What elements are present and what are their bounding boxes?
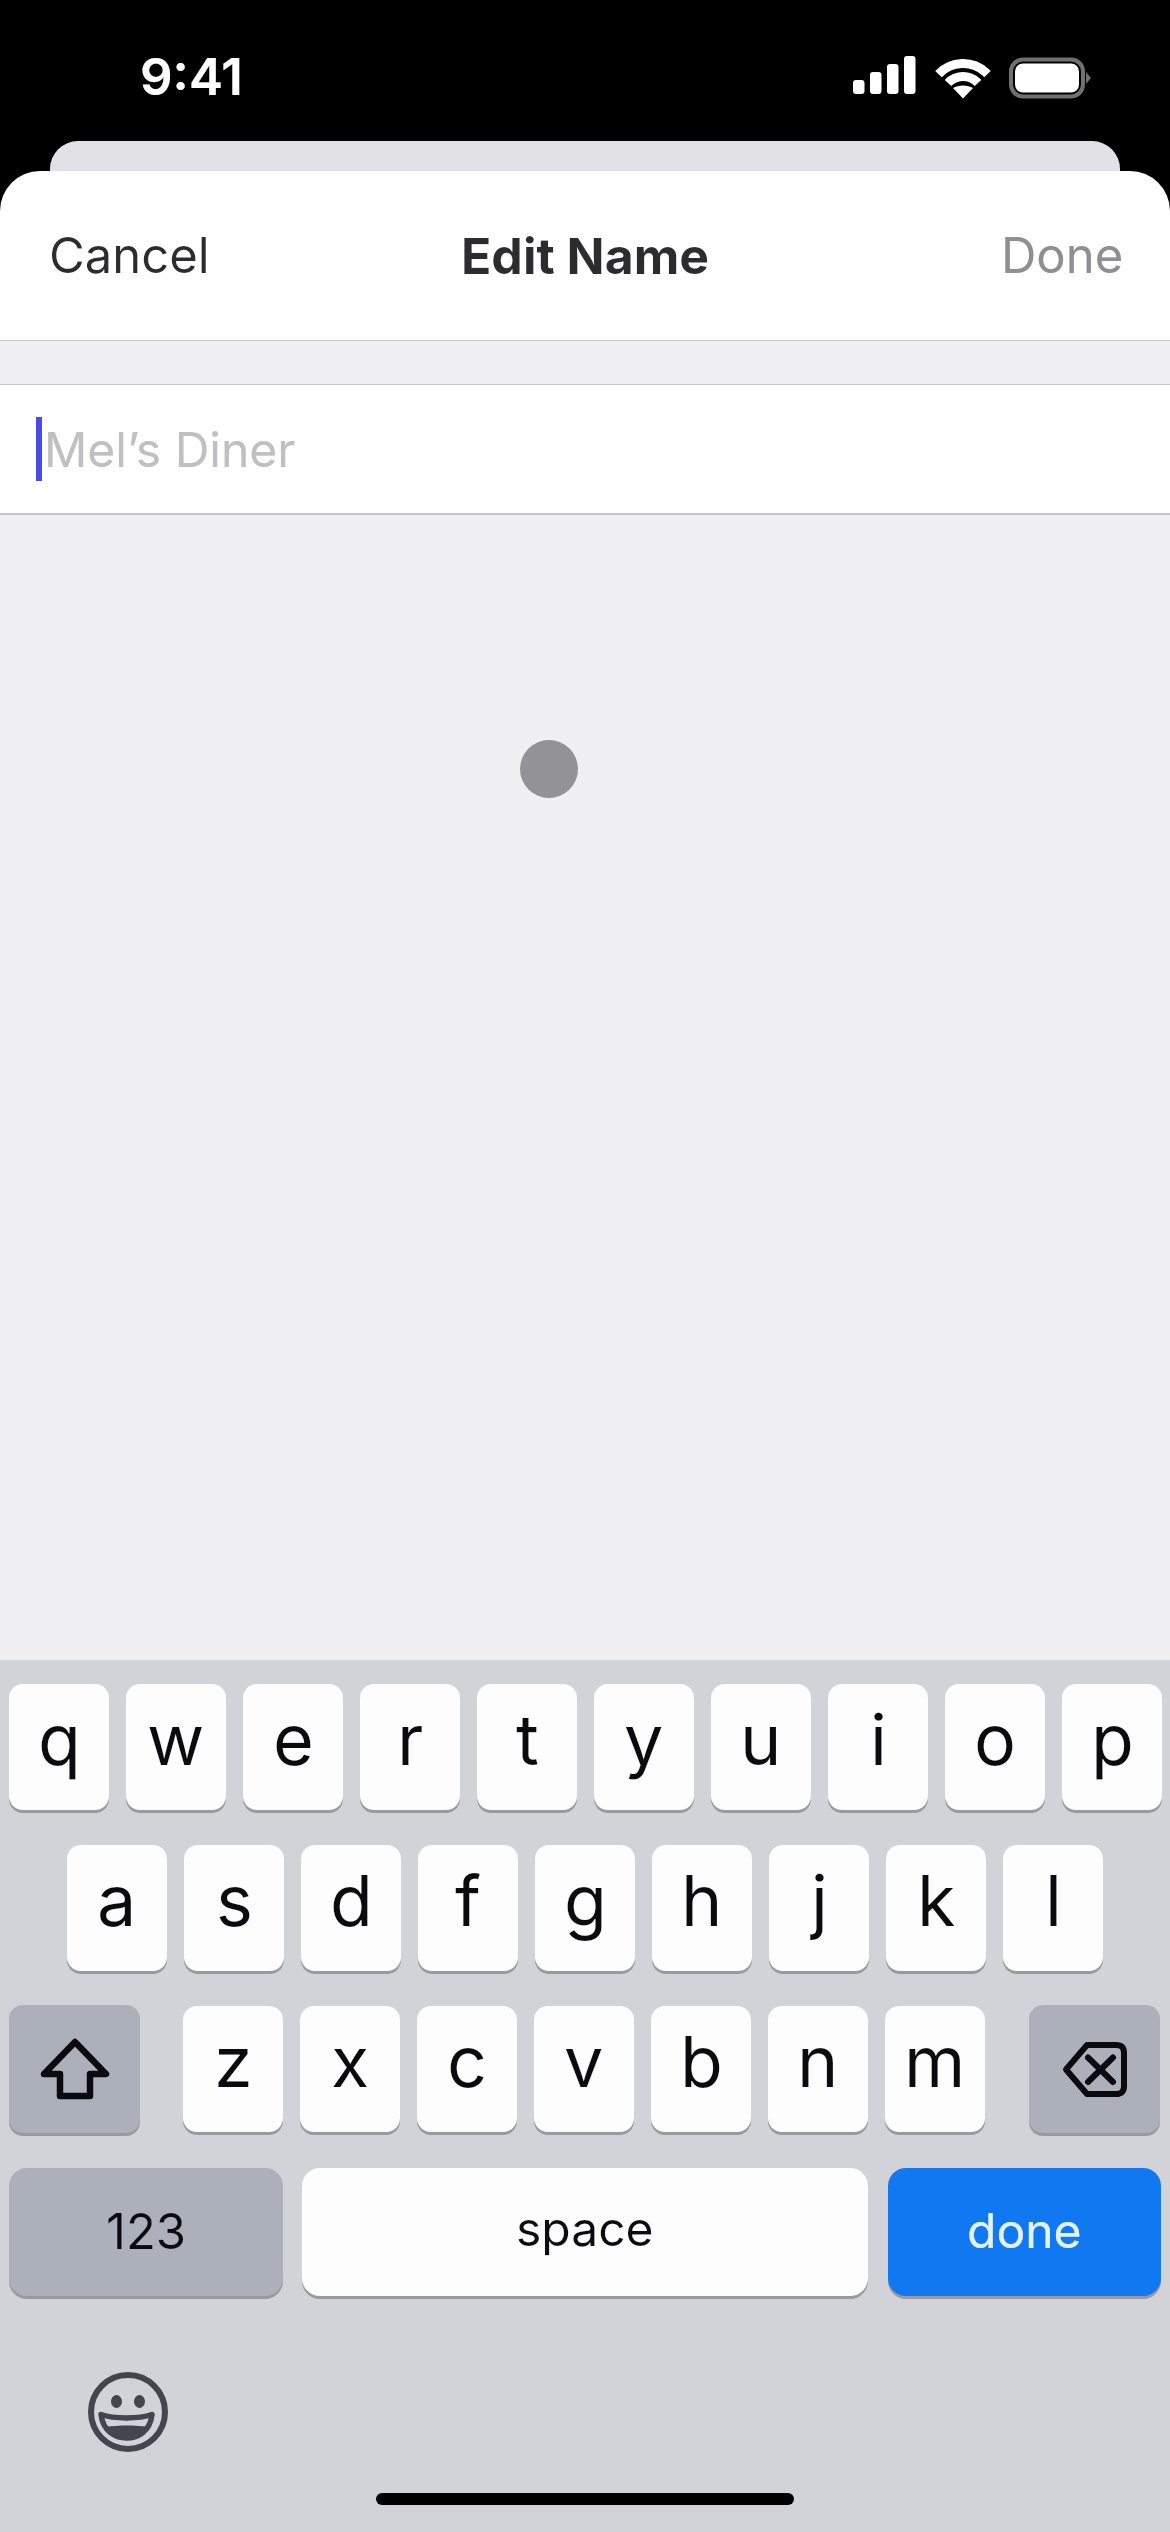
button[interactable]: done (888, 2168, 1161, 2296)
staticText: Cancel (49, 226, 210, 285)
button[interactable]: o (945, 1684, 1045, 1810)
button[interactable]: b (651, 2006, 751, 2132)
button[interactable]: Emoji keyboard (84, 2368, 172, 2456)
staticText: s (216, 1858, 253, 1943)
button[interactable]: j (769, 1845, 869, 1971)
staticText: h (681, 1858, 723, 1943)
button[interactable]: 123 (9, 2168, 283, 2296)
staticText: g (564, 1858, 607, 1943)
staticText: done (967, 2201, 1082, 2259)
button[interactable]: l (1003, 1845, 1103, 1971)
button[interactable]: Shift (9, 2005, 140, 2133)
staticText: 123 (106, 2202, 187, 2261)
button[interactable]: d (301, 1845, 401, 1971)
staticText: k (917, 1858, 956, 1943)
staticText: z (214, 2019, 253, 2104)
staticText: a (97, 1858, 137, 1943)
button[interactable]: x (300, 2006, 400, 2132)
button[interactable]: Cancel (0, 196, 250, 315)
button[interactable]: w (126, 1684, 226, 1810)
button[interactable]: k (886, 1845, 986, 1971)
staticText: w (147, 1697, 205, 1782)
button[interactable]: q (9, 1684, 109, 1810)
staticText: Done (1001, 226, 1124, 285)
button[interactable]: Done (961, 196, 1170, 315)
button[interactable]: s (184, 1845, 284, 1971)
staticText: x (331, 2019, 370, 2104)
staticText: v (564, 2019, 604, 2104)
staticText: f (455, 1858, 481, 1943)
staticText: r (397, 1697, 424, 1782)
staticText: q (38, 1697, 81, 1782)
button[interactable]: Backspace (1029, 2005, 1160, 2133)
staticText: p (1091, 1697, 1134, 1782)
button[interactable]: n (768, 2006, 868, 2132)
button[interactable]: c (417, 2006, 517, 2132)
button[interactable]: y (594, 1684, 694, 1810)
button[interactable]: i (828, 1684, 928, 1810)
button[interactable]: space (302, 2168, 868, 2296)
button[interactable]: t (477, 1684, 577, 1810)
button[interactable]: h (652, 1845, 752, 1971)
button[interactable]: r (360, 1684, 460, 1810)
staticText: o (974, 1697, 1016, 1782)
staticText: space (516, 2199, 654, 2257)
button[interactable]: u (711, 1684, 811, 1810)
staticText: n (797, 2019, 839, 2104)
staticText: Mel’s Diner (44, 420, 296, 478)
staticText: Edit Name (461, 226, 710, 286)
staticText: t (516, 1697, 539, 1782)
button[interactable]: a (67, 1845, 167, 1971)
button[interactable]: g (535, 1845, 635, 1971)
staticText: c (447, 2019, 487, 2104)
staticText: i (870, 1697, 887, 1782)
staticText: j (811, 1858, 828, 1943)
button[interactable]: f (418, 1845, 518, 1971)
button[interactable]: Mel’s Diner (0, 385, 1170, 513)
button[interactable]: p (1062, 1684, 1162, 1810)
staticText: b (680, 2019, 723, 2104)
staticText: u (740, 1697, 782, 1782)
staticText: l (1045, 1858, 1062, 1943)
staticText: m (904, 2019, 966, 2104)
button[interactable]: v (534, 2006, 634, 2132)
button[interactable]: m (885, 2006, 985, 2132)
staticText: 9:41 (140, 46, 243, 108)
staticText: d (330, 1858, 373, 1943)
button[interactable]: e (243, 1684, 343, 1810)
button[interactable]: z (183, 2006, 283, 2132)
staticText: y (624, 1697, 664, 1782)
staticText: e (273, 1697, 314, 1782)
